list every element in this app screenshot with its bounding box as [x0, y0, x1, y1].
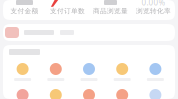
- staticText: 支付金额: [10, 7, 38, 15]
- button[interactable]: Shortcut: [6, 89, 39, 99]
- button[interactable]: Shortcut: [72, 63, 106, 81]
- button[interactable]: Shortcut: [39, 63, 72, 81]
- button[interactable]: Shortcut: [106, 89, 139, 99]
- button[interactable]: Shortcut: [139, 89, 172, 99]
- button[interactable]: [3, 24, 175, 41]
- staticText: 支付订单数: [50, 7, 85, 15]
- staticText: 商品浏览量: [93, 7, 128, 15]
- button[interactable]: Shortcut: [39, 89, 72, 99]
- button[interactable]: Shortcut: [6, 63, 39, 81]
- button[interactable]: Shortcut: [139, 63, 172, 81]
- button[interactable]: Shortcut: [72, 89, 106, 99]
- staticText: 浏览转化率: [136, 7, 171, 15]
- button[interactable]: Shortcut: [106, 63, 139, 81]
- staticText: 0.00%: [141, 0, 165, 8]
